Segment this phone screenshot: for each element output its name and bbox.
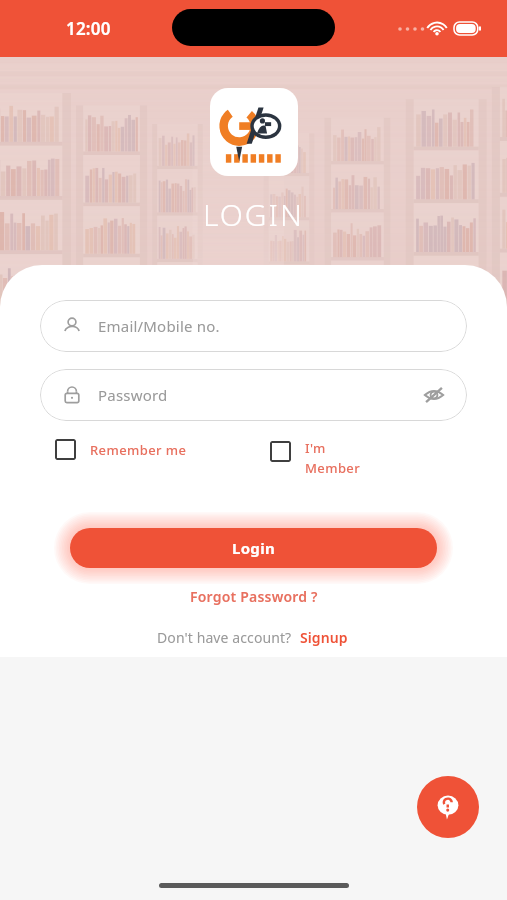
staticText: LOGIN [203,194,304,235]
staticText: Password [98,385,423,405]
button[interactable]: Help [417,776,479,838]
button[interactable]: Show password [423,384,445,406]
staticText: I'm [305,439,326,457]
button[interactable]: Email/Mobile no. [40,300,467,352]
staticText: 12:00 [66,17,111,40]
staticText: Don't have account? [157,628,292,647]
staticText: Email/Mobile no. [98,316,445,336]
staticText: Member [305,459,361,477]
staticText: Forgot Password ? [190,587,318,606]
staticText: Signup [300,628,348,647]
button[interactable]: Signup [298,626,350,649]
staticText: Remember me [90,441,187,459]
staticText: Login [232,538,275,558]
button[interactable]: Login [70,528,437,568]
button[interactable]: Password [40,369,467,421]
button[interactable]: Remember me [55,439,187,460]
button[interactable]: I'm [270,439,361,477]
button[interactable]: Forgot Password ? [178,583,330,610]
